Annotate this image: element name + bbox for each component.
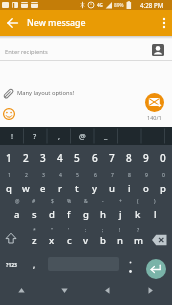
button[interactable]: 0 (153, 167, 172, 183)
button[interactable]: ?123 (0, 258, 22, 272)
staticText: 7 (109, 151, 115, 165)
button[interactable] (151, 232, 169, 248)
button[interactable]: % (59, 193, 79, 209)
button[interactable]: _ (96, 128, 116, 144)
button[interactable] (129, 280, 172, 305)
button[interactable] (0, 280, 43, 305)
staticText: 8 (126, 151, 132, 165)
staticText: 9 (145, 172, 148, 179)
button[interactable]: + (110, 193, 130, 209)
button[interactable]: ! (110, 222, 130, 238)
staticText: & (84, 198, 88, 205)
button[interactable]: n (110, 232, 130, 248)
staticText: z (32, 234, 37, 247)
button[interactable]: 4 (50, 150, 70, 166)
staticText: m (134, 234, 143, 247)
button[interactable]: d (42, 206, 62, 222)
button[interactable]: c (59, 232, 79, 248)
button[interactable]: g (76, 206, 96, 222)
button[interactable]: ? (25, 128, 45, 144)
button[interactable]: u (102, 180, 122, 196)
button[interactable]: s (24, 206, 44, 222)
button[interactable]: 3 (33, 167, 53, 183)
staticText: 4:28 PM (140, 1, 164, 9)
button[interactable]: l (145, 206, 165, 222)
button[interactable]: - (93, 193, 113, 209)
button[interactable] (145, 93, 164, 112)
button[interactable]: 3 (33, 150, 53, 166)
button[interactable]: p (153, 180, 172, 196)
button[interactable]: 5 (67, 150, 87, 166)
button[interactable]: 2 (16, 150, 36, 166)
button[interactable]: ) (145, 193, 165, 209)
button[interactable]: 9 (136, 167, 156, 183)
button[interactable] (151, 43, 165, 57)
button[interactable]: v (76, 232, 96, 248)
button[interactable]: , (24, 256, 44, 272)
button[interactable]: & (76, 193, 96, 209)
button[interactable]: b (93, 232, 113, 248)
button[interactable]: 1 (0, 150, 19, 166)
staticText: 4 (57, 151, 63, 165)
button[interactable]: w (16, 180, 36, 196)
button[interactable]: t (67, 180, 87, 196)
button[interactable] (0, 39, 172, 60)
button[interactable]: ! (2, 128, 22, 144)
button[interactable]: ? (128, 222, 148, 238)
button[interactable]: h (93, 206, 113, 222)
staticText: % (67, 198, 72, 205)
button[interactable]: : (76, 222, 96, 238)
button[interactable]: 6 (85, 150, 105, 166)
staticText: v (83, 234, 89, 247)
button[interactable]: 4 (50, 167, 70, 183)
button[interactable]: o (136, 180, 156, 196)
button[interactable]: 5 (67, 167, 87, 183)
button[interactable]: z (24, 232, 44, 248)
button[interactable]: 9 (136, 150, 156, 166)
button[interactable]: ; (93, 222, 113, 238)
button[interactable]: m (128, 232, 148, 248)
staticText: o (143, 182, 149, 195)
button[interactable]: q (0, 180, 19, 196)
button[interactable]: 6 (85, 167, 105, 183)
button[interactable] (86, 280, 129, 305)
button[interactable]: 7 (102, 150, 122, 166)
button[interactable]: f (59, 206, 79, 222)
button[interactable]: 2 (16, 167, 36, 183)
button[interactable]: , (49, 128, 69, 144)
button[interactable] (2, 107, 16, 121)
button[interactable] (43, 280, 86, 305)
button[interactable] (2, 230, 20, 248)
staticText: i (128, 182, 131, 195)
button[interactable]: 0 (153, 150, 172, 166)
button[interactable]: @ (7, 193, 27, 209)
button[interactable]: 7 (102, 167, 122, 183)
button[interactable] (3, 15, 21, 31)
button[interactable]: 1 (0, 167, 19, 183)
button[interactable]: " (42, 222, 62, 238)
staticText: Many layout options! (17, 89, 75, 97)
button[interactable]: j (110, 206, 130, 222)
button[interactable]: x (42, 232, 62, 248)
button[interactable] (146, 259, 166, 279)
button[interactable]: # (24, 193, 44, 209)
button[interactable] (1, 86, 16, 101)
button[interactable]: i (119, 180, 139, 196)
button[interactable]: a (7, 206, 27, 222)
button[interactable]: y (85, 180, 105, 196)
button[interactable]: k (128, 206, 148, 222)
button[interactable]: 8 (119, 150, 139, 166)
staticText: - (102, 198, 104, 205)
button[interactable]: r (50, 180, 70, 196)
button[interactable]: e (33, 180, 53, 196)
button[interactable]: 8 (119, 167, 139, 183)
button[interactable]: ' (59, 222, 79, 238)
staticText: 6 (92, 151, 98, 165)
staticText: ( (137, 198, 139, 205)
button[interactable]: ( (128, 193, 148, 209)
button[interactable]: $ (42, 193, 62, 209)
button[interactable] (157, 14, 171, 32)
button[interactable]: * (24, 222, 44, 238)
button[interactable]: @ (72, 128, 92, 144)
